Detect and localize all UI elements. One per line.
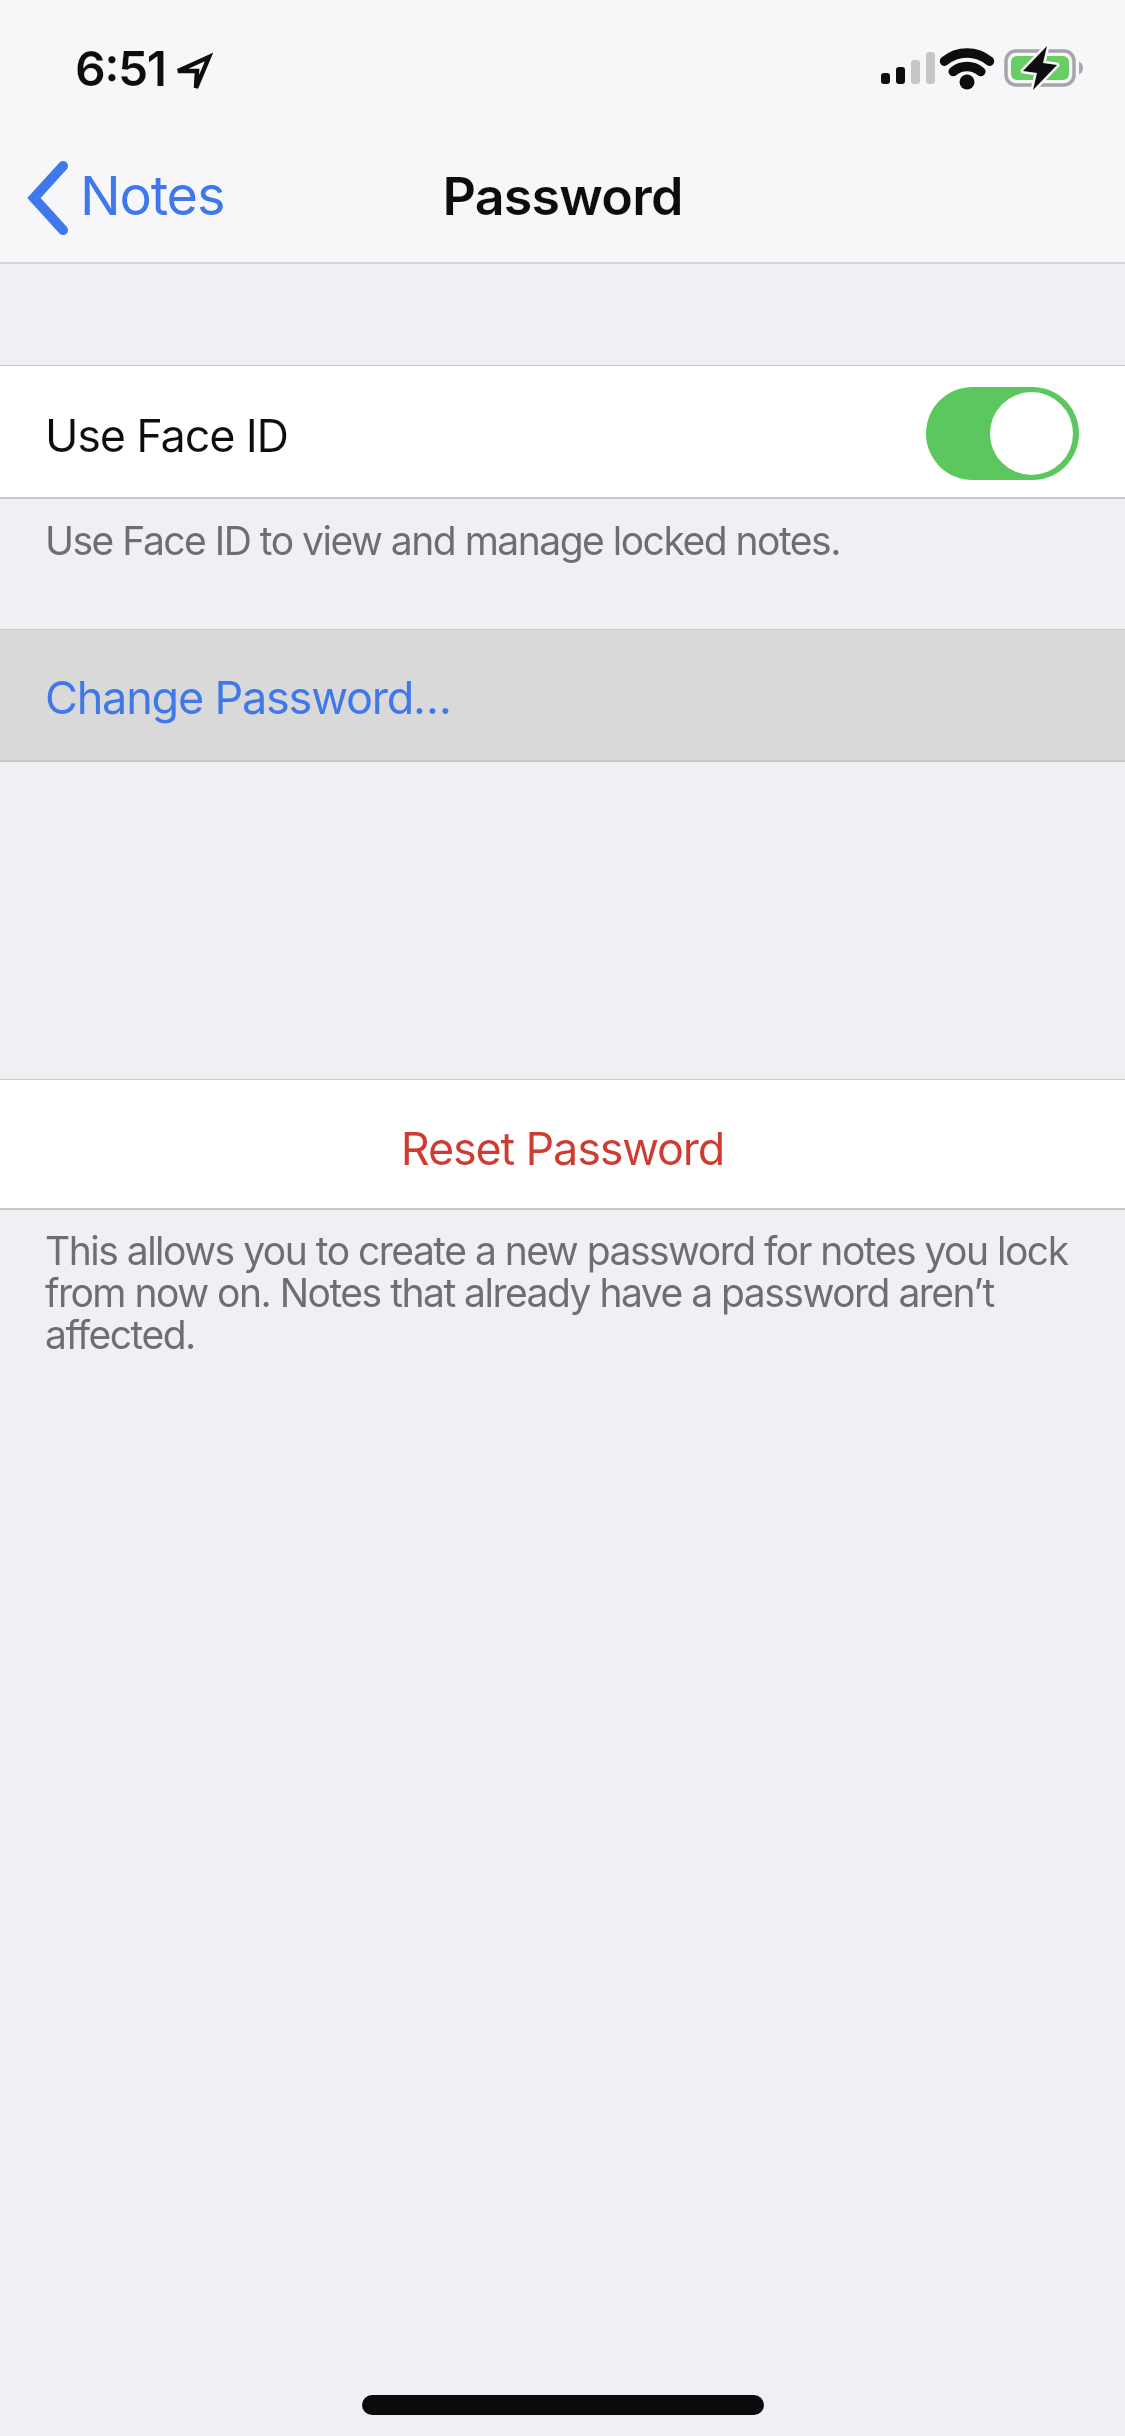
staticText: from now on. Notes that already have a p… xyxy=(45,1269,994,1316)
button[interactable]: Reset Password xyxy=(0,1080,1125,1208)
staticText: Change Password… xyxy=(45,670,451,724)
staticText: 6:51 xyxy=(75,39,166,97)
button[interactable]: Use Face ID xyxy=(0,366,1125,497)
staticText: Use Face ID to view and manage locked no… xyxy=(45,517,840,564)
staticText: affected. xyxy=(45,1311,195,1358)
staticText: This allows you to create a new password… xyxy=(45,1227,1068,1274)
staticText: Password xyxy=(0,165,1125,228)
staticText: Notes xyxy=(80,163,225,228)
staticText: Reset Password xyxy=(0,1121,1125,1175)
button[interactable]: Notes xyxy=(10,150,240,250)
staticText: Use Face ID xyxy=(45,408,288,462)
button[interactable]: Change Password… xyxy=(0,630,1125,760)
